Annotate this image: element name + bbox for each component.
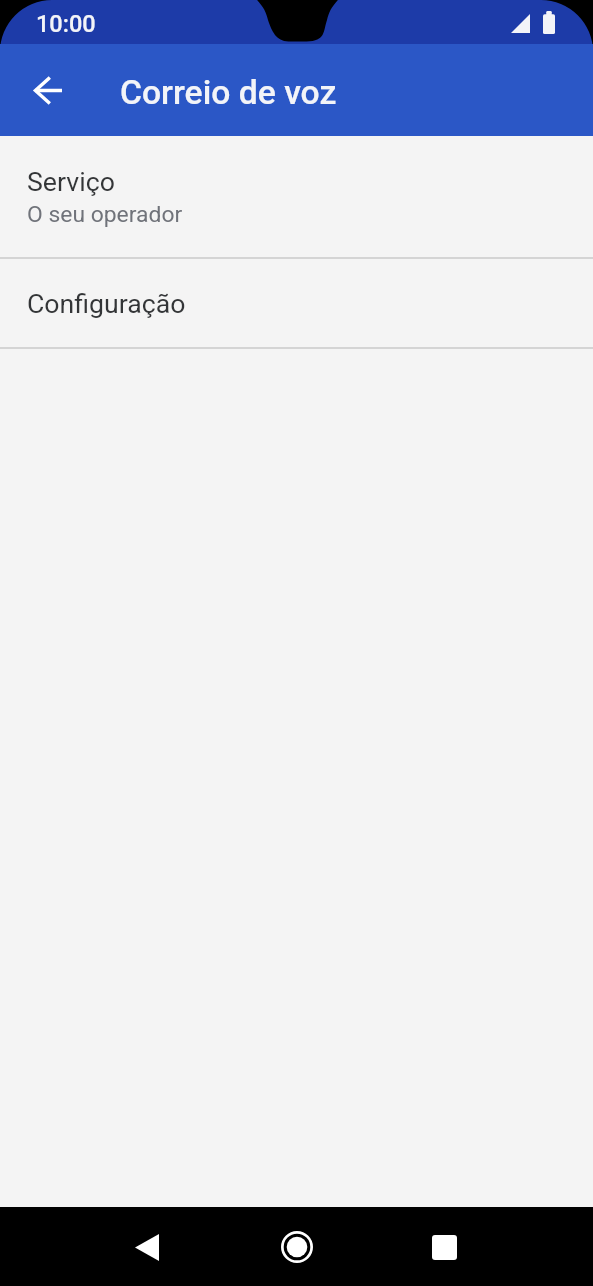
- button[interactable]: Recent apps: [413, 1216, 475, 1278]
- staticText: O seu operador: [27, 201, 183, 228]
- staticText: 10:00: [36, 10, 96, 38]
- button[interactable]: Serviço: [0, 136, 593, 257]
- button[interactable]: Back: [116, 1216, 178, 1278]
- button[interactable]: Home: [265, 1216, 327, 1278]
- staticText: Correio de voz: [120, 73, 337, 112]
- button[interactable]: Configuração: [0, 259, 593, 347]
- staticText: Serviço: [27, 166, 115, 197]
- staticText: Configuração: [27, 288, 186, 319]
- button[interactable]: Back: [16, 58, 80, 122]
